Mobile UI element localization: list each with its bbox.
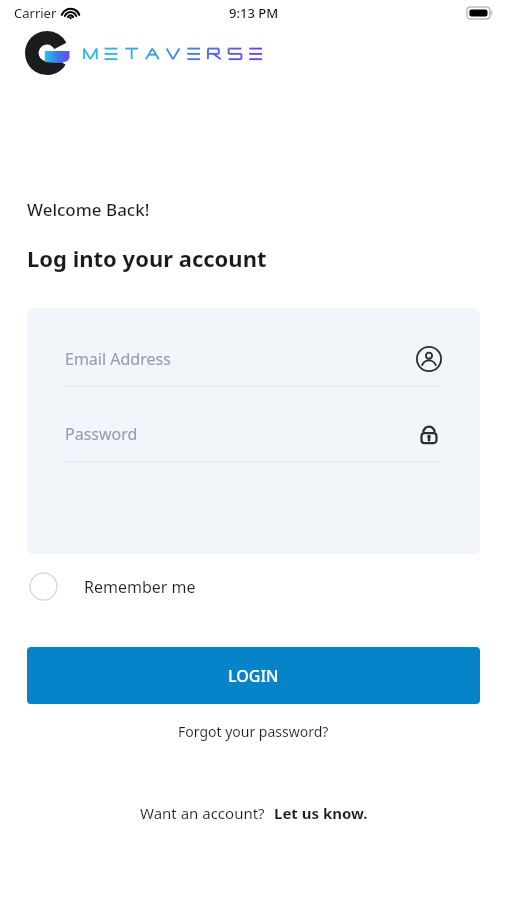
button[interactable]: LOGIN	[27, 647, 480, 704]
staticText: Let us know.	[274, 803, 368, 823]
button[interactable]: Let us know.	[274, 803, 368, 823]
button[interactable]: Password	[65, 421, 442, 462]
button[interactable]: Email Address	[65, 346, 442, 387]
other: Email account	[416, 346, 442, 372]
button[interactable]: Remember me	[27, 566, 198, 607]
other: Password	[416, 421, 442, 447]
staticText: Carrier	[14, 4, 57, 22]
staticText: Remember me	[84, 576, 196, 598]
button[interactable]: Forgot your password?	[0, 722, 507, 741]
staticText: Forgot your password?	[178, 722, 329, 741]
staticText: Email Address	[65, 348, 171, 370]
staticText: 9:13 PM	[229, 4, 279, 22]
staticText: LOGIN	[228, 665, 279, 687]
staticText: Password	[65, 423, 138, 445]
staticText: Want an account?	[140, 803, 265, 823]
staticText: Welcome Back!	[27, 198, 150, 221]
staticText: Log into your account	[27, 243, 267, 273]
